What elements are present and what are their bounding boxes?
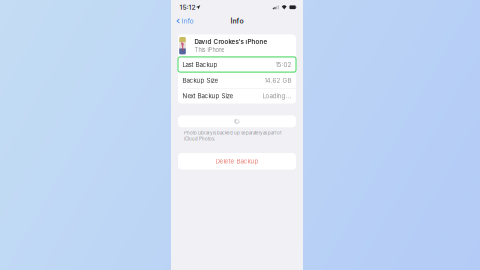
staticText: This iPhone: [194, 46, 224, 53]
staticText: Delete Backup: [215, 158, 258, 165]
staticText: 15:12: [179, 3, 195, 11]
button[interactable]: Delete Backup: [178, 153, 296, 170]
staticText: 14.62 GB: [265, 77, 292, 84]
staticText: Next Backup Size: [182, 92, 233, 100]
staticText: Loading...: [263, 92, 292, 100]
button[interactable]: Next Backup Size: [178, 88, 296, 103]
staticText: 15:02: [276, 61, 292, 68]
staticText: Info: [181, 17, 193, 25]
staticText: iCloud Photos.: [184, 136, 215, 141]
staticText: Info: [230, 17, 243, 25]
staticText: Last Backup: [182, 61, 217, 68]
staticText: Photo Library is backed up separately as…: [184, 130, 282, 135]
button[interactable]: Last Backup: [178, 57, 296, 72]
staticText: Backup Size: [182, 77, 218, 84]
staticText: David Crookes's iPhone: [194, 38, 267, 45]
button[interactable]: David Crookes's iPhone: [178, 34, 296, 57]
button[interactable]: Info: [171, 15, 196, 26]
button[interactable]: Backup Size: [178, 73, 296, 88]
